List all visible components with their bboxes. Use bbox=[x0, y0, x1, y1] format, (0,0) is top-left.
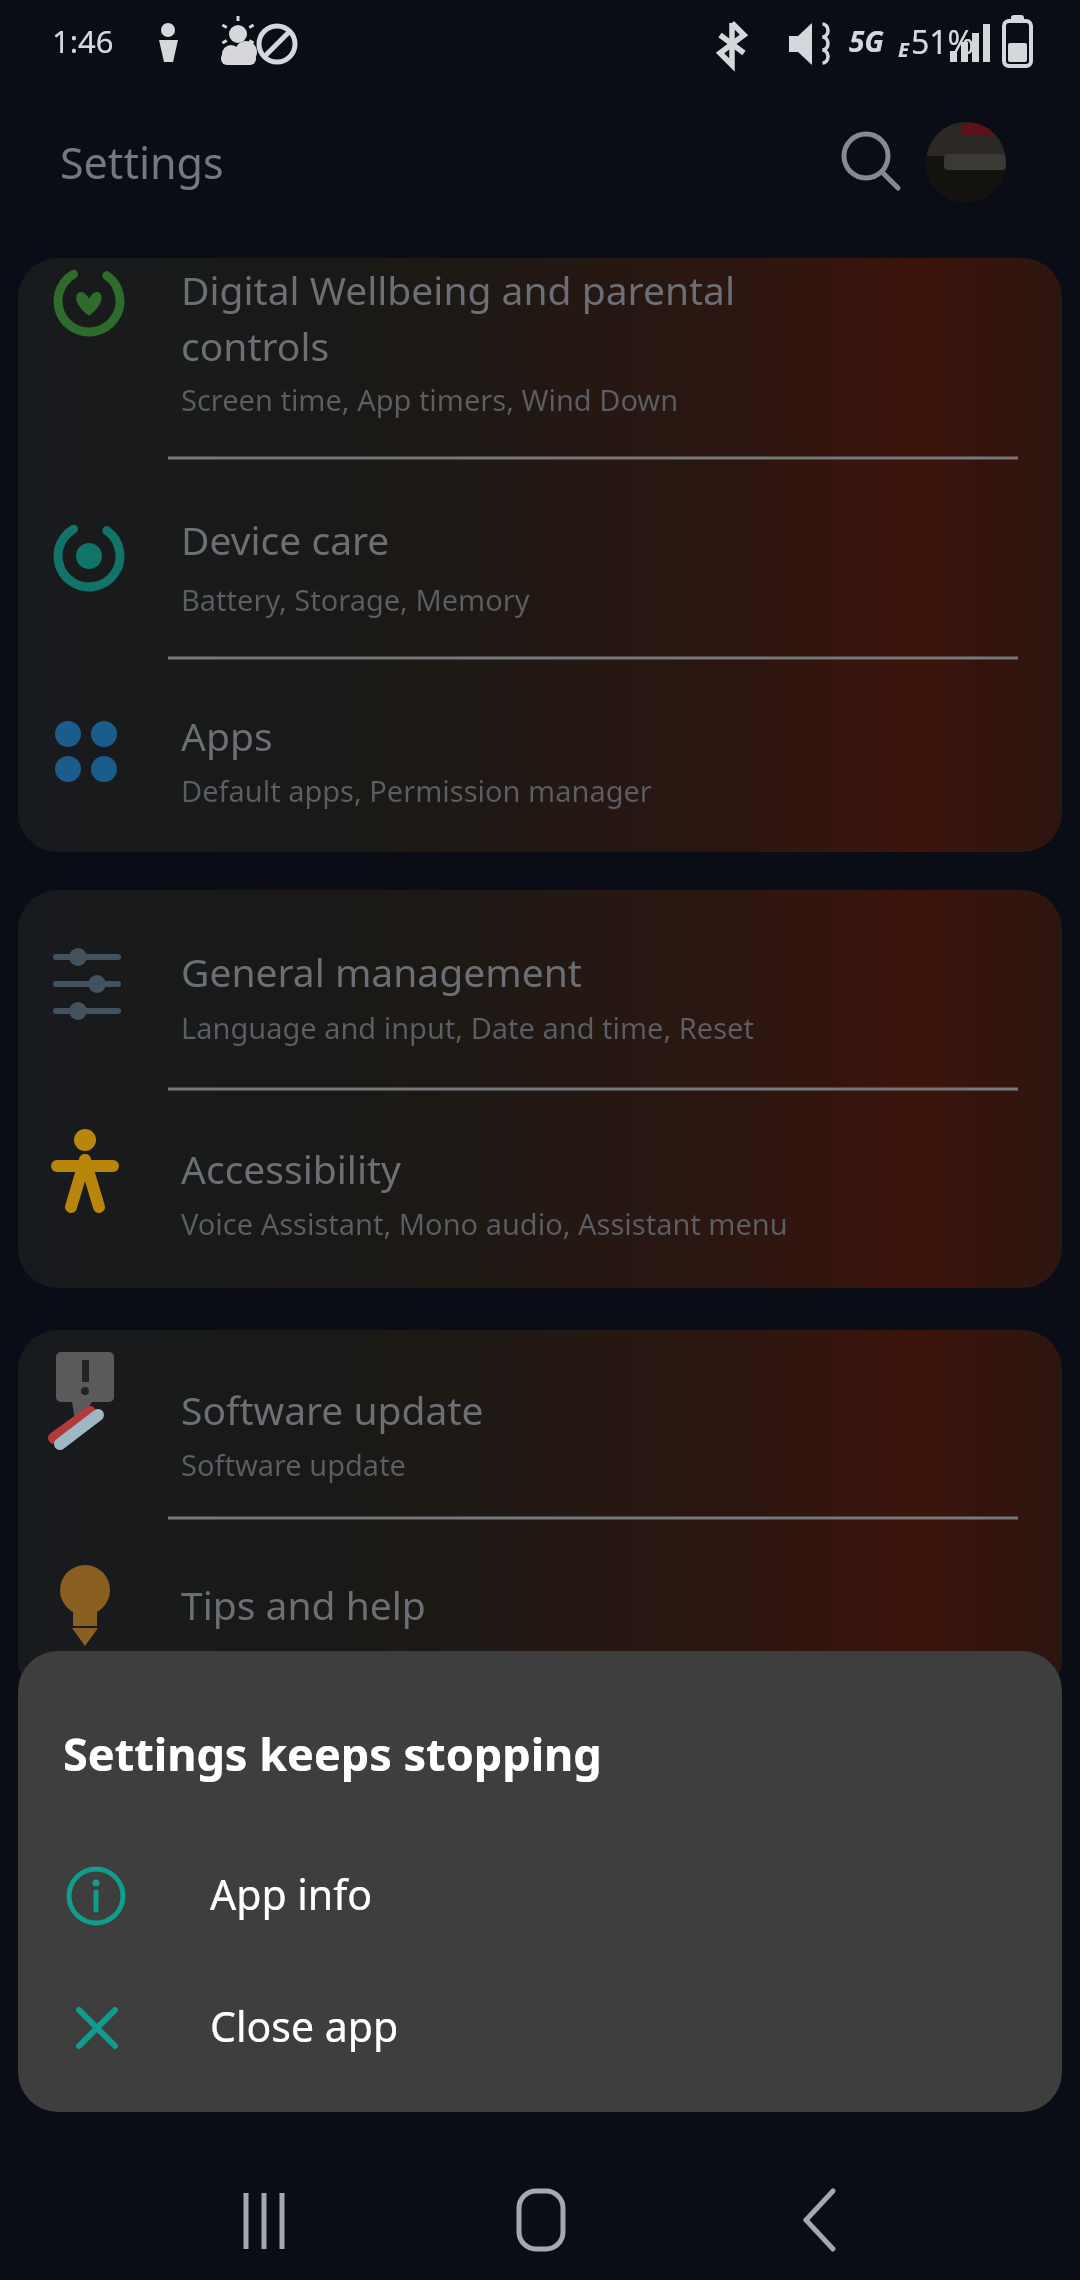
staticText: Battery, Storage, Memory bbox=[181, 580, 530, 619]
staticText: Digital Wellbeing and parental bbox=[181, 263, 736, 316]
button[interactable]: Recents bbox=[180, 2165, 340, 2275]
staticText: Screen time, App timers, Wind Down bbox=[181, 380, 679, 419]
staticText: Default apps, Permission manager bbox=[181, 771, 652, 810]
staticText: Accessibility bbox=[181, 1142, 401, 1195]
staticText: E bbox=[898, 36, 909, 63]
staticText: Voice Assistant, Mono audio, Assistant m… bbox=[181, 1204, 788, 1243]
button[interactable]: Search bbox=[830, 122, 912, 204]
button[interactable]: Back bbox=[740, 2165, 900, 2275]
staticText: Apps bbox=[181, 709, 273, 762]
button[interactable]: Profile bbox=[926, 122, 1006, 202]
staticText: Software update bbox=[181, 1383, 484, 1436]
staticText: Device care bbox=[181, 513, 390, 566]
staticText: 51% bbox=[911, 20, 975, 64]
button[interactable]: Home bbox=[460, 2165, 620, 2275]
staticText: Software update bbox=[181, 1445, 406, 1484]
staticText: Settings bbox=[60, 133, 224, 192]
staticText: Tips and help bbox=[181, 1578, 426, 1631]
button[interactable]: App info bbox=[18, 1840, 1062, 1952]
staticText: 5G bbox=[849, 22, 884, 60]
staticText: 1:46 bbox=[52, 20, 114, 62]
staticText: controls bbox=[181, 319, 330, 372]
staticText: Language and input, Date and time, Reset bbox=[181, 1008, 754, 1047]
staticText: General management bbox=[181, 945, 582, 998]
staticText: Close app bbox=[210, 1998, 399, 2054]
staticText: Settings keeps stopping bbox=[63, 1723, 602, 1784]
staticText: App info bbox=[210, 1866, 373, 1922]
button[interactable]: Close app bbox=[18, 1972, 1062, 2084]
